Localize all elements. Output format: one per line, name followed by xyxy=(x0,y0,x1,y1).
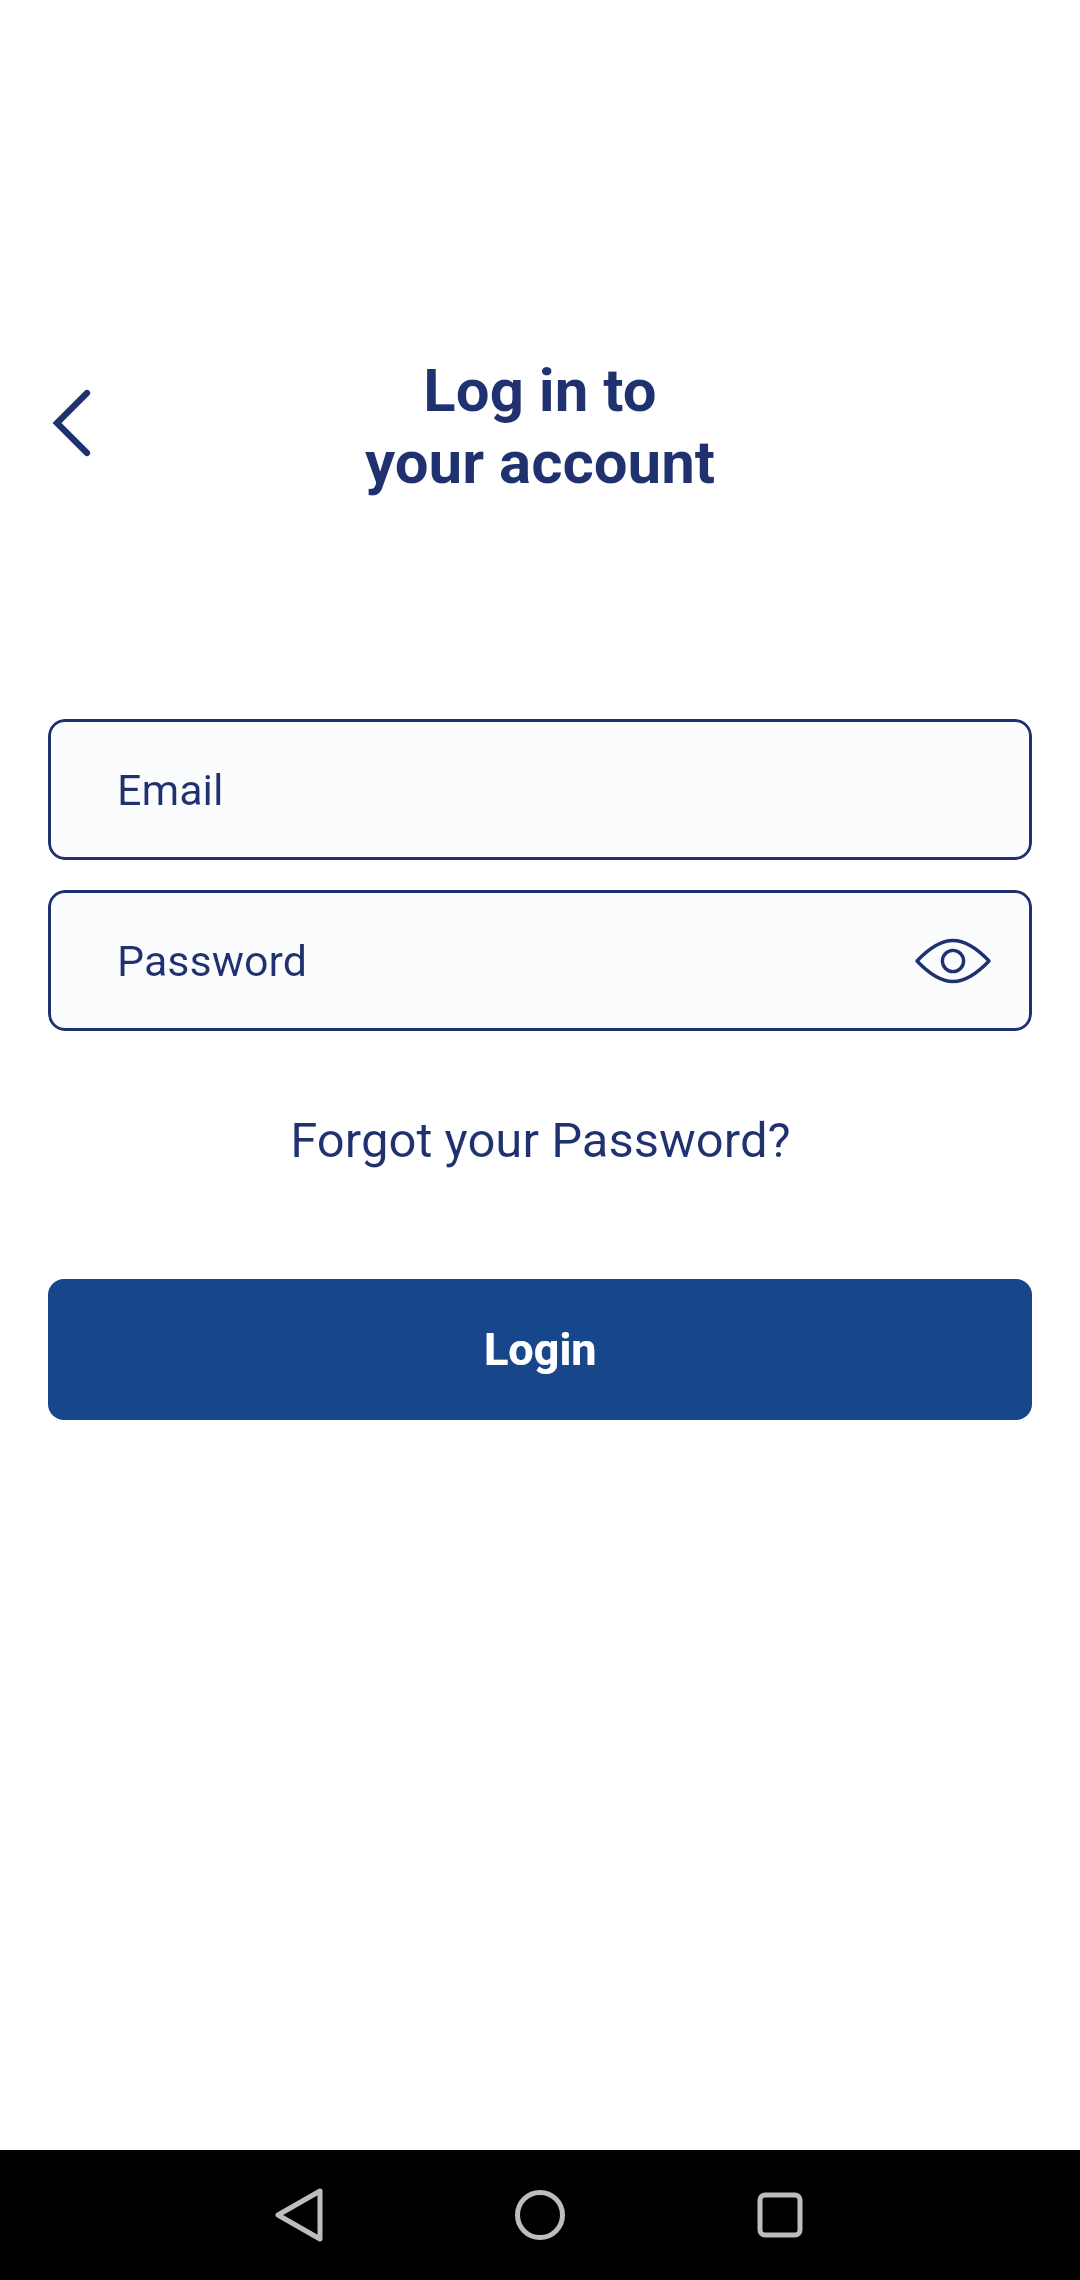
staticText: Log in to your account xyxy=(0,355,1080,498)
staticText: Forgot your Password? xyxy=(290,1112,791,1169)
button[interactable]: Password xyxy=(48,890,1032,1031)
button[interactable]: Recents xyxy=(725,2160,835,2270)
button[interactable]: Back xyxy=(245,2160,355,2270)
staticText: Email xyxy=(117,765,224,815)
button[interactable]: Email xyxy=(48,719,1032,860)
button[interactable]: Back xyxy=(22,358,122,458)
button[interactable]: Forgot your Password? xyxy=(0,1102,1080,1178)
button[interactable]: Show password xyxy=(903,911,1003,1011)
button[interactable]: Home xyxy=(485,2160,595,2270)
button[interactable]: Login xyxy=(48,1279,1032,1420)
staticText: Login xyxy=(484,1323,597,1376)
staticText: Password xyxy=(117,936,307,986)
